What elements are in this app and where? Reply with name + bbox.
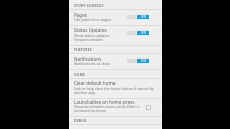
button[interactable]: Toggle setting xyxy=(126,13,150,20)
staticText: Clear default home. xyxy=(74,80,117,86)
staticText: Launchables on home press xyxy=(74,99,135,105)
staticText: Pages xyxy=(74,12,87,18)
staticText: Show launchables menu when Dash is acces… xyxy=(74,104,140,113)
button[interactable]: Toggle setting xyxy=(126,29,150,36)
staticText: Use posts from pages xyxy=(74,17,112,22)
button[interactable]: Toggle setting xyxy=(126,57,150,64)
staticText: DEBUG xyxy=(74,118,87,122)
staticText: HOME xyxy=(74,72,86,76)
button[interactable]: Pages xyxy=(69,9,162,25)
staticText: FEATURES xyxy=(74,47,92,51)
staticText: Status Updates xyxy=(74,27,107,33)
staticText: Link to help clear the home button if ow… xyxy=(74,86,156,95)
staticText: STORY SOURCES xyxy=(74,3,104,7)
staticText: Notifications xyxy=(74,56,102,62)
staticText: ON xyxy=(141,59,146,63)
button[interactable]: Clear default home. xyxy=(69,78,162,98)
button[interactable]: Notifications xyxy=(69,53,162,69)
button[interactable]: Debug log xyxy=(69,124,162,129)
staticText: Show status updates (requires restart) xyxy=(74,33,110,42)
button[interactable]: Launchables on home press xyxy=(69,98,162,116)
staticText: Notifications on dash xyxy=(74,61,111,66)
button[interactable]: Status Updates xyxy=(69,25,162,46)
staticText: ON xyxy=(141,31,146,35)
staticText: ON xyxy=(141,15,146,19)
